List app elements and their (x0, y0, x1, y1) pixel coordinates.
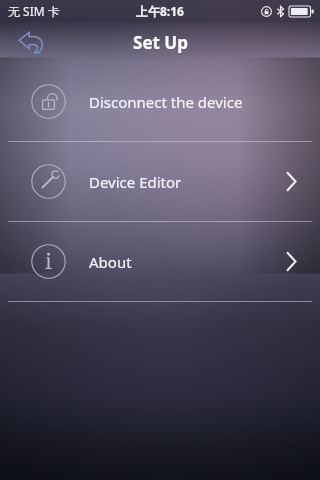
staticText: 上午8:16 (136, 3, 184, 19)
staticText: Set Up (133, 31, 188, 54)
staticText: Device Editor (89, 172, 182, 192)
staticText: About (89, 252, 132, 272)
button[interactable]: Disconnect the device (0, 62, 320, 141)
staticText: 无 SIM 卡 (8, 3, 60, 19)
button[interactable]: Back (12, 22, 52, 62)
staticText: Disconnect the device (89, 92, 243, 112)
button[interactable]: About (0, 222, 320, 301)
button[interactable]: Device Editor (0, 142, 320, 221)
